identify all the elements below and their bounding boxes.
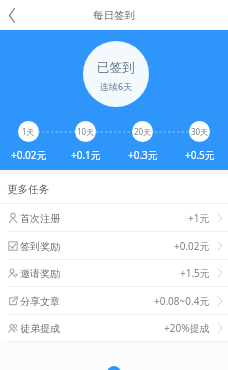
staticText: +1.5元 <box>180 266 210 280</box>
button[interactable]: 徒弟提成 <box>0 314 228 342</box>
button[interactable]: 邀请奖励 <box>0 259 228 287</box>
staticText: 1天 <box>22 126 35 137</box>
staticText: 20天 <box>134 126 152 137</box>
staticText: 签到奖励 <box>20 240 60 253</box>
staticText: 更多任务 <box>7 183 49 196</box>
button[interactable]: Withdraw <box>107 366 121 370</box>
staticText: +1元 <box>188 211 210 225</box>
staticText: +0.02元 <box>11 148 47 162</box>
staticText: +0.5元 <box>185 148 215 162</box>
staticText: 首次注册 <box>20 212 60 225</box>
staticText: +20%提成 <box>164 321 210 335</box>
staticText: 连续6天 <box>100 80 133 92</box>
button[interactable]: 首次注册 <box>0 204 228 232</box>
button[interactable]: 分享文章 <box>0 287 228 315</box>
button[interactable]: 1天 <box>18 121 39 142</box>
staticText: +0.3元 <box>128 148 158 162</box>
button[interactable]: 已签到 <box>83 41 149 107</box>
staticText: +0.1元 <box>71 148 101 162</box>
staticText: +0.02元 <box>174 239 210 253</box>
staticText: 每日签到 <box>93 9 135 22</box>
staticText: 徒弟提成 <box>20 322 60 335</box>
button[interactable]: Back <box>0 0 28 30</box>
button[interactable]: 签到奖励 <box>0 232 228 260</box>
staticText: 分享文章 <box>20 295 60 308</box>
staticText: 30天 <box>191 126 209 137</box>
button[interactable]: 30天 <box>189 121 210 142</box>
staticText: +0.08~0.4元 <box>154 294 210 308</box>
staticText: 已签到 <box>97 60 135 76</box>
staticText: 邀请奖励 <box>20 267 60 280</box>
button[interactable]: 10天 <box>75 121 96 142</box>
staticText: 10天 <box>77 126 95 137</box>
button[interactable]: 20天 <box>132 121 153 142</box>
